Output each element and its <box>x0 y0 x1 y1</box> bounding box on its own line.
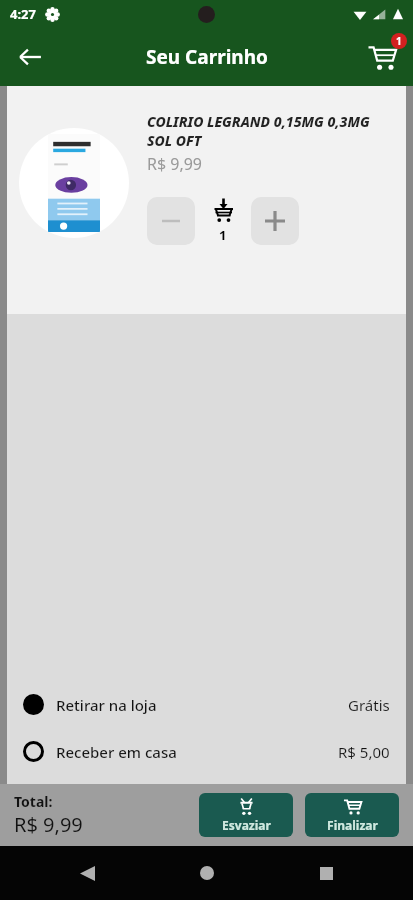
staticText: Seu Carrinho <box>146 44 268 70</box>
button[interactable]: Finalizar <box>305 793 399 837</box>
staticText: COLIRIO LEGRAND 0,15MG 0,3MG SOL OFT <box>147 112 396 150</box>
staticText: 4:27 <box>10 5 36 23</box>
button[interactable]: Recents <box>309 856 343 890</box>
button[interactable]: COLIRIO LEGRAND 0,15MG 0,3MG SOL OFT <box>7 86 406 314</box>
staticText: R$ 9,99 <box>14 811 83 838</box>
button[interactable]: Esvaziar <box>199 793 293 837</box>
button[interactable]: Home <box>190 856 224 890</box>
staticText: 1 <box>396 34 402 48</box>
staticText: Receber em casa <box>56 742 177 762</box>
button[interactable]: Decrease <box>147 197 195 245</box>
button[interactable]: Back <box>8 35 52 79</box>
staticText: R$ 9,99 <box>147 153 203 175</box>
button[interactable]: Receber em casa <box>7 741 406 762</box>
staticText: Grátis <box>348 695 390 715</box>
button[interactable]: Cart <box>359 34 405 80</box>
button[interactable]: Increase <box>251 197 299 245</box>
button[interactable]: Retirar na loja <box>7 694 406 715</box>
button[interactable]: Back <box>70 856 104 890</box>
staticText: Total: <box>14 792 53 811</box>
staticText: Esvaziar <box>222 817 271 833</box>
staticText: 1 <box>219 226 227 244</box>
staticText: Finalizar <box>327 817 378 833</box>
staticText: Retirar na loja <box>56 695 157 715</box>
staticText: R$ 5,00 <box>338 742 390 762</box>
